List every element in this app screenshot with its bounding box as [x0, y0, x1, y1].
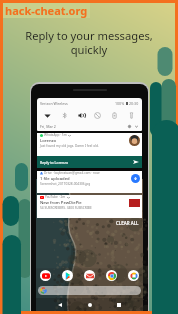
button[interactable]: Recents [113, 299, 125, 311]
button[interactable]: CLEAR ALL [113, 219, 142, 227]
button[interactable]: Drive · kayleratuan@gmail.com · now [37, 171, 142, 193]
button[interactable]: Settings [126, 123, 133, 130]
button[interactable]: Reply to Lorenzo [37, 156, 142, 168]
button[interactable]: Back [54, 299, 66, 311]
staticText: Lorenzo [40, 138, 57, 144]
button[interactable]: Home [84, 299, 96, 311]
button[interactable]: Photos [128, 270, 139, 281]
staticText: hack-cheat.org [5, 3, 88, 18]
staticText: Screenshot_20170328-004306.jpg [40, 182, 91, 186]
button[interactable]: Flashlight [125, 109, 138, 122]
staticText: Fri, Mar 2 [40, 124, 56, 129]
button[interactable]: Play Store [62, 270, 73, 281]
staticText: WhatsApp · 5m [44, 133, 67, 137]
staticText: CLEAR ALL [116, 220, 139, 226]
button[interactable]: Volume [75, 109, 88, 122]
staticText: 1 file uploaded [40, 176, 70, 182]
staticText: Drive · kayleratuan@gmail.com · now [44, 171, 100, 175]
staticText: Verizon Wireless [40, 101, 68, 106]
staticText: Just found my old jogs. Damn I feel old. [40, 144, 99, 148]
button[interactable]: Google search [38, 286, 141, 295]
button[interactable]: Gmail [84, 270, 95, 281]
button[interactable]: Chrome [106, 270, 117, 281]
button[interactable]: Do not disturb [91, 109, 104, 122]
staticText: 54 SUBSCRIBERS. 3400 SUBSCRIBE [40, 206, 92, 210]
button[interactable]: YouTube · 2m [37, 195, 142, 218]
staticText: 100% [115, 101, 125, 106]
button[interactable]: Battery saver [108, 109, 121, 122]
staticText: Reply to your messages, quickly [9, 28, 169, 57]
button[interactable]: WhatsApp · 5m [37, 133, 142, 156]
staticText: YouTube · 2m [45, 195, 66, 199]
button[interactable]: YouTube [40, 270, 51, 281]
button[interactable]: Expand [133, 123, 140, 130]
staticText: Reply to Lorenzo [40, 160, 69, 165]
button[interactable]: Wi-Fi [41, 109, 54, 122]
button[interactable]: Bluetooth [58, 109, 71, 122]
staticText: New from PewDiePie [40, 200, 82, 206]
staticText: 20:30 [129, 101, 139, 106]
